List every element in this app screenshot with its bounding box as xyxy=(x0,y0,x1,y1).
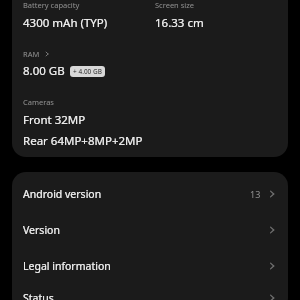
staticText: Status xyxy=(23,291,54,300)
button[interactable]: Version xyxy=(12,212,288,248)
button[interactable]: Android version xyxy=(12,176,288,212)
staticText: Legal information xyxy=(23,259,111,273)
staticText: Rear 64MP+8MP+2MP xyxy=(23,133,143,149)
staticText: Screen size xyxy=(155,0,194,10)
staticText: RAM xyxy=(23,49,40,59)
staticText: Front 32MP xyxy=(23,112,86,128)
staticText: Cameras xyxy=(23,97,54,107)
button[interactable]: RAM details xyxy=(23,49,51,59)
staticText: 8.00 GB xyxy=(23,63,65,79)
button[interactable]: Status xyxy=(12,284,288,300)
staticText: 13 xyxy=(250,188,261,200)
staticText: Android version xyxy=(23,187,102,201)
staticText: 16.33 cm xyxy=(155,15,204,31)
staticText: 4300 mAh (TYP) xyxy=(23,15,108,31)
staticText: + 4.00 GB xyxy=(73,67,102,76)
staticText: Battery capacity xyxy=(23,0,80,10)
button[interactable]: Legal information xyxy=(12,248,288,284)
staticText: Version xyxy=(23,223,60,237)
